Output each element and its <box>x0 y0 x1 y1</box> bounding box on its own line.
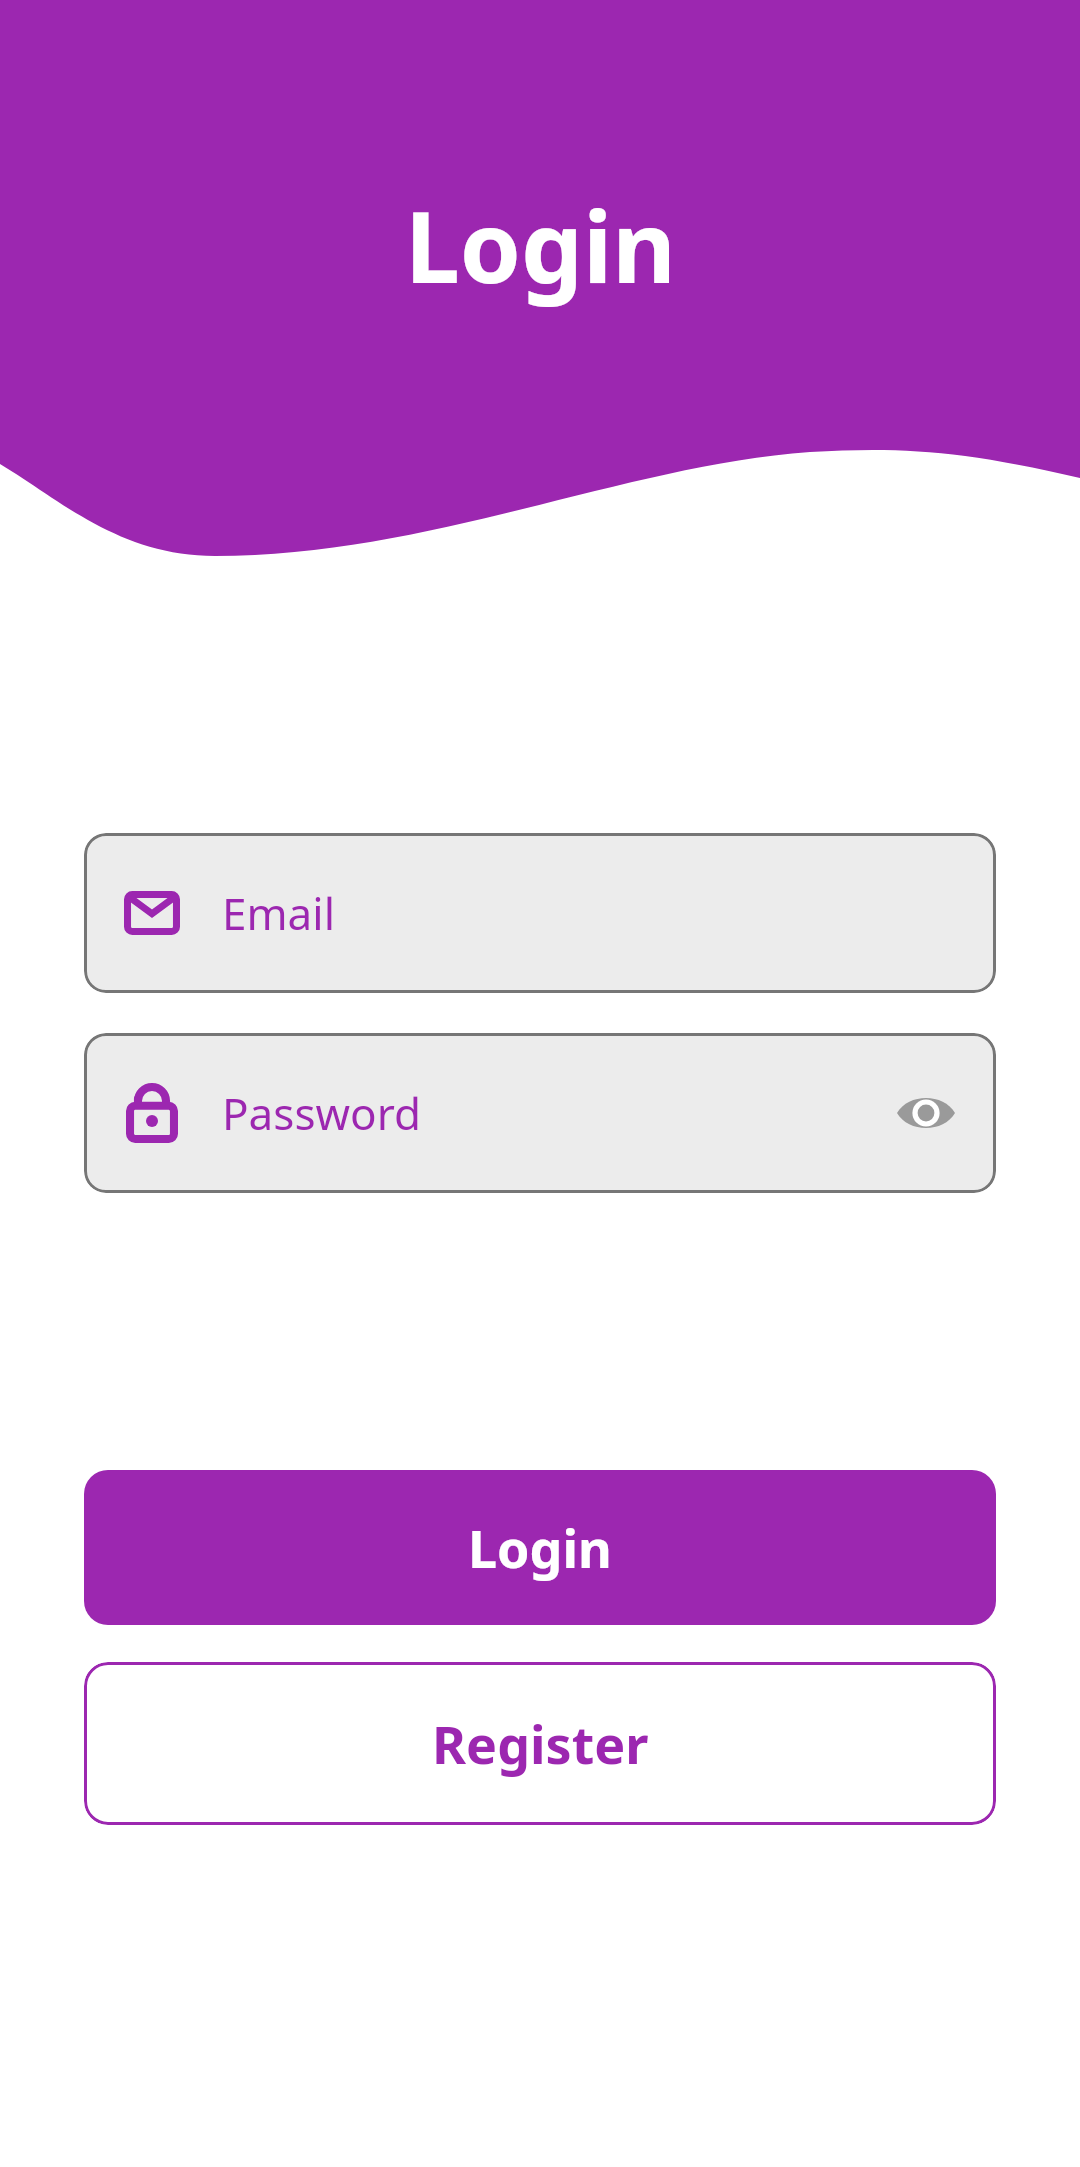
staticText: Email <box>222 883 335 943</box>
staticText: Login <box>405 178 676 311</box>
button[interactable]: Login <box>84 1470 996 1625</box>
button[interactable]: Password <box>84 1033 996 1193</box>
button[interactable]: Register <box>84 1662 996 1825</box>
button[interactable]: Show password <box>894 1081 958 1145</box>
staticText: Password <box>222 1083 422 1143</box>
staticText: Login <box>468 1512 612 1583</box>
button[interactable]: Email <box>84 833 996 993</box>
staticText: Register <box>432 1708 649 1779</box>
